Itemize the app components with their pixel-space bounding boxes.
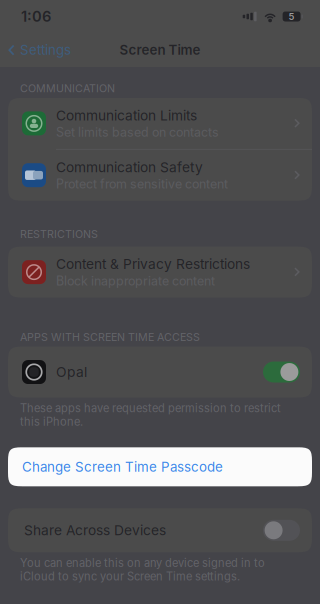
button[interactable]: Change Screen Time Passcode <box>8 447 312 486</box>
staticText: 5 <box>289 11 295 22</box>
staticText: Settings <box>20 42 71 58</box>
staticText: Change Screen Time Passcode <box>22 459 223 475</box>
staticText: Block inappropriate content <box>56 273 215 288</box>
staticText: Opal <box>56 364 87 380</box>
staticText: Content & Privacy Restrictions <box>56 256 250 272</box>
staticText: COMMUNICATION <box>20 82 115 95</box>
button[interactable]: Share Across Devices <box>263 520 300 541</box>
staticText: These apps have requested permission to … <box>20 401 281 428</box>
button[interactable]: Communication Safety <box>8 150 312 201</box>
staticText: You can enable this on any device signed… <box>20 556 265 583</box>
staticText: Share Across Devices <box>24 522 166 539</box>
button[interactable]: Settings <box>0 35 71 65</box>
staticText: RESTRICTIONS <box>20 228 98 241</box>
staticText: Set limits based on contacts <box>56 125 219 140</box>
staticText: Protect from sensitive content <box>56 176 228 191</box>
staticText: Communication Limits <box>56 107 197 124</box>
button[interactable]: Communication Limits <box>8 98 312 149</box>
staticText: 1:06 <box>21 8 51 25</box>
staticText: APPS WITH SCREEN TIME ACCESS <box>20 331 200 343</box>
button[interactable]: Content & Privacy Restrictions <box>8 247 312 298</box>
staticText: Communication Safety <box>56 159 203 175</box>
button[interactable]: Opal screen time access <box>263 361 300 382</box>
staticText: Screen Time <box>119 42 200 58</box>
